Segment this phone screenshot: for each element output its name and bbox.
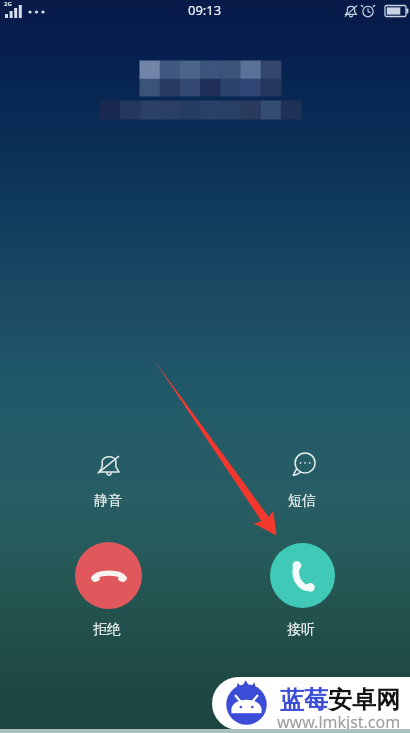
button[interactable]: 拒绝 [71, 542, 145, 639]
staticText: 蓝莓 [280, 685, 328, 715]
staticText: 拒绝 [93, 621, 121, 639]
button[interactable]: 静音 [73, 452, 147, 510]
staticText: 接听 [287, 621, 315, 639]
staticText: 09:13 [188, 1, 222, 19]
staticText: 安卓网 [328, 685, 400, 715]
staticText: 短信 [288, 492, 316, 510]
button[interactable]: 接听 [265, 543, 339, 639]
staticText: 2G [4, 0, 12, 8]
button[interactable]: 短信 [267, 452, 341, 510]
staticText: www.lmkjst.com [277, 711, 401, 730]
staticText: 静音 [94, 492, 122, 510]
